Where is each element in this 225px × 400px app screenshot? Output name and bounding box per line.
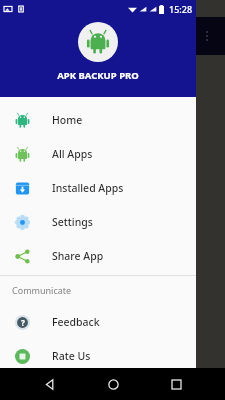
staticText: All Apps bbox=[52, 147, 93, 161]
staticText: ? bbox=[21, 317, 25, 328]
button[interactable]: Home bbox=[0, 103, 196, 137]
button[interactable]: Settings bbox=[0, 205, 196, 239]
button[interactable]: Rate Us bbox=[0, 339, 196, 373]
staticText: Share App bbox=[52, 249, 104, 263]
staticText: 15:28 bbox=[169, 3, 193, 15]
button[interactable]: ? bbox=[0, 305, 196, 339]
button[interactable]: Home bbox=[98, 369, 128, 399]
staticText: Home bbox=[52, 113, 83, 127]
button[interactable]: Installed Apps bbox=[0, 171, 196, 205]
button[interactable]: All Apps bbox=[0, 137, 196, 171]
button[interactable]: APK BACKUP PRO bbox=[0, 17, 196, 97]
staticText: Settings bbox=[52, 215, 93, 229]
staticText: Rate Us bbox=[52, 349, 91, 363]
button[interactable]: Recent apps bbox=[161, 369, 191, 399]
staticText: APK BACKUP PRO bbox=[57, 69, 139, 82]
staticText: Feedback bbox=[52, 315, 100, 329]
staticText: Communicate bbox=[12, 284, 72, 296]
button[interactable]: Share App bbox=[0, 239, 196, 273]
staticText: Installed Apps bbox=[52, 181, 124, 195]
button[interactable]: Back bbox=[34, 369, 64, 399]
